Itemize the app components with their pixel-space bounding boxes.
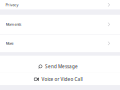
staticText: More [5, 41, 13, 46]
staticText: Privacy [5, 2, 18, 7]
button[interactable]: Send Message [0, 60, 120, 73]
staticText: Moments [5, 22, 21, 27]
staticText: Send Message [45, 63, 78, 70]
staticText: Voice or Video Call [42, 76, 83, 82]
button[interactable]: Privacy [0, 0, 120, 10]
button[interactable]: Moments [0, 15, 120, 34]
button[interactable]: Voice or Video Call [0, 73, 120, 86]
button[interactable]: More [0, 34, 120, 52]
